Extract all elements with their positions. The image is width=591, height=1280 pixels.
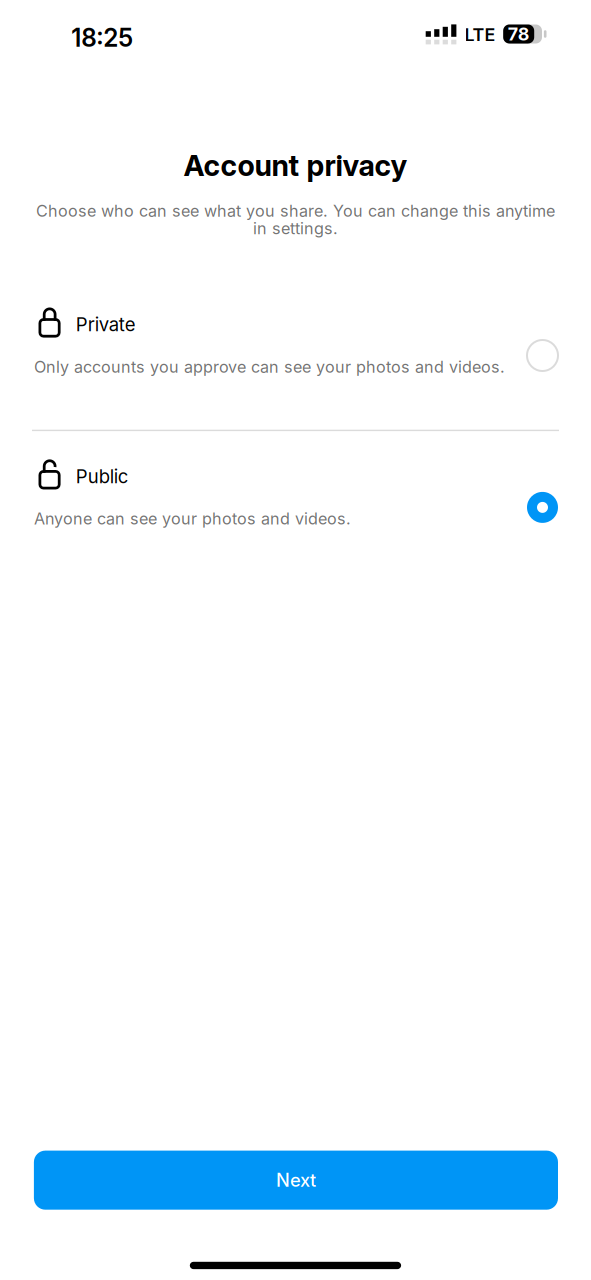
staticText: Public — [76, 465, 129, 488]
button[interactable]: Next — [34, 1151, 558, 1210]
staticText: Private — [76, 313, 136, 336]
staticText: LTE — [465, 24, 496, 46]
button[interactable]: Private — [0, 300, 591, 422]
staticText: 78 — [508, 23, 530, 45]
staticText: Next — [276, 1169, 316, 1191]
button[interactable]: Public — [0, 452, 591, 552]
staticText: Choose who can see what you share. You c… — [36, 201, 555, 220]
staticText: Account privacy — [183, 148, 407, 183]
staticText: in settings. — [253, 218, 338, 238]
staticText: Anyone can see your photos and videos. — [34, 509, 351, 528]
staticText: 18:25 — [71, 23, 133, 53]
staticText: Only accounts you approve can see your p… — [34, 357, 505, 376]
